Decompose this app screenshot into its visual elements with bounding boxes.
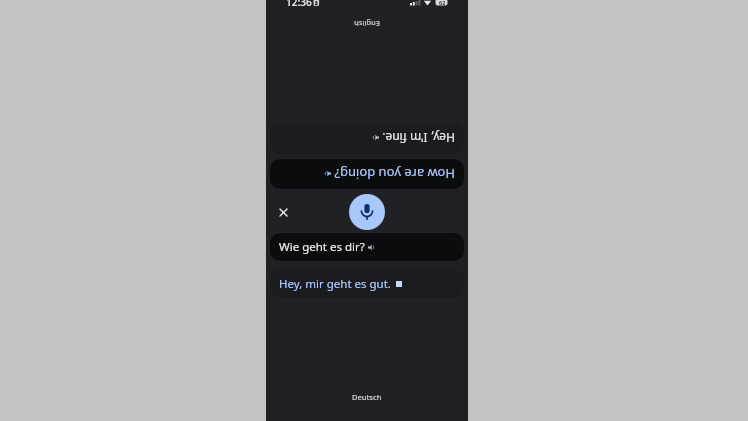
- button[interactable]: Wie geht es dir?: [270, 233, 464, 261]
- staticText: Hey, mir geht es gut.: [279, 276, 391, 292]
- button[interactable]: Hey, mir geht es gut.: [270, 269, 464, 298]
- button[interactable]: [349, 194, 385, 230]
- staticText: Hey, I'm fine.: [382, 130, 455, 146]
- staticText: Wie geht es dir?: [279, 239, 365, 255]
- button[interactable]: How are you doing?: [270, 159, 464, 189]
- staticText: English: [354, 19, 380, 29]
- staticText: 12:36: [286, 0, 312, 9]
- staticText: Deutsch: [352, 392, 382, 402]
- staticText: 62: [439, 0, 446, 6]
- staticText: How are you doing?: [334, 165, 455, 183]
- button[interactable]: Hey, I'm fine.: [270, 123, 464, 154]
- button[interactable]: [273, 202, 293, 222]
